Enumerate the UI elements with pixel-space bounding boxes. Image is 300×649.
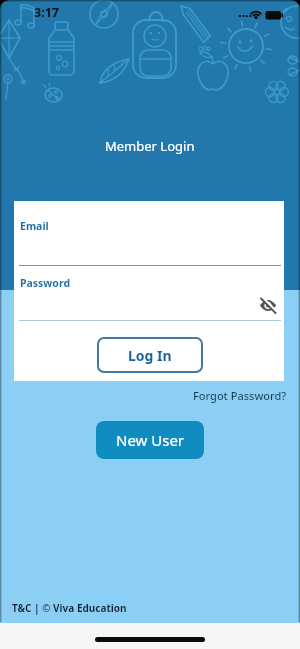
staticText: New User — [116, 430, 185, 450]
button[interactable]: Log In — [97, 337, 203, 373]
staticText: 3:17 — [34, 4, 59, 21]
staticText: Email — [20, 219, 49, 233]
staticText: T&C | © Viva Education — [12, 601, 127, 615]
button[interactable] — [257, 295, 279, 315]
button[interactable] — [14, 269, 284, 323]
staticText: Log In — [128, 346, 172, 365]
button[interactable]: Forgot Password? — [193, 388, 287, 403]
button[interactable] — [14, 213, 284, 267]
staticText: Password — [20, 276, 71, 290]
button[interactable]: New User — [96, 421, 204, 459]
staticText: Member Login — [105, 137, 195, 155]
